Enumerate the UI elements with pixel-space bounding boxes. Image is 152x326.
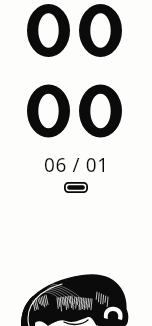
- staticText: 06 / 01: [44, 152, 109, 178]
